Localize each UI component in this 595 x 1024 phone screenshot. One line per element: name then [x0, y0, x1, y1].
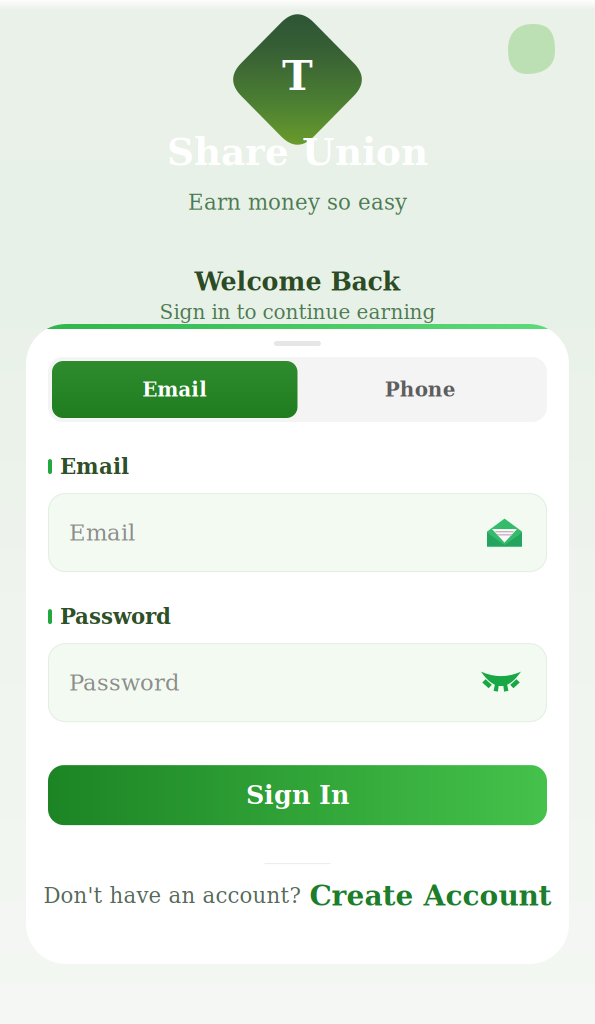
staticText: Email — [60, 454, 129, 479]
staticText: Password — [69, 669, 180, 696]
button[interactable]: Email — [52, 361, 297, 418]
staticText: Email — [142, 378, 207, 401]
staticText: Share Union — [167, 130, 428, 174]
staticText: Sign in to continue earning — [159, 300, 435, 324]
staticText: Don't have an account? — [43, 883, 300, 908]
staticText: Create Account — [309, 879, 551, 912]
staticText: Phone — [385, 378, 456, 401]
staticText: Welcome Back — [194, 267, 400, 296]
staticText: Sign In — [246, 780, 349, 810]
staticText: Email — [69, 519, 135, 546]
button[interactable]: Phone — [297, 361, 543, 418]
button[interactable]: Sign In — [26, 765, 569, 825]
staticText: Password — [60, 604, 171, 629]
staticText: Earn money so easy — [188, 190, 407, 215]
button[interactable]: Create Account — [309, 879, 551, 912]
staticText: T — [282, 51, 313, 100]
